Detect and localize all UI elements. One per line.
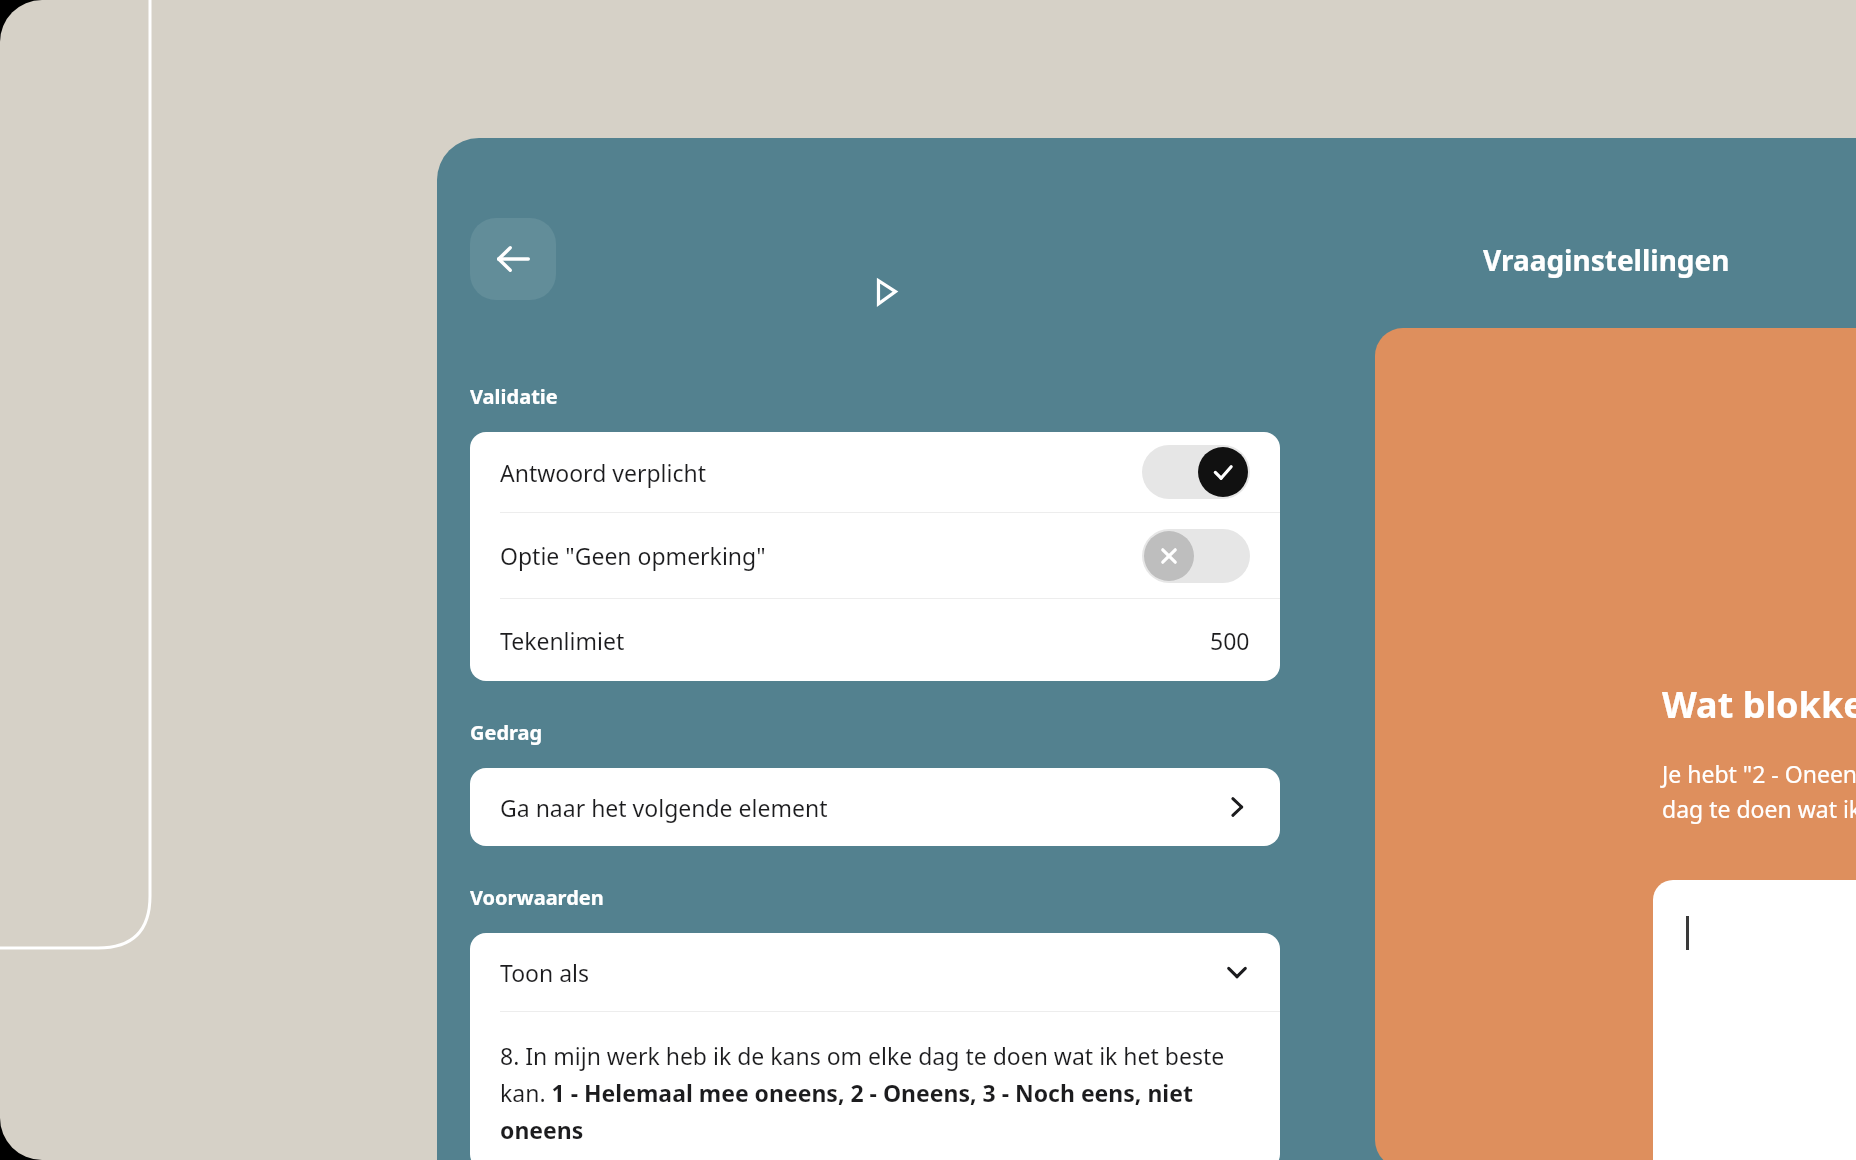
staticText: 8. In mijn werk heb ik de kans om elke d…: [500, 1040, 1256, 1146]
button[interactable]: Uit: [1142, 529, 1250, 583]
staticText: Optie "Geen opmerking": [500, 540, 766, 571]
staticText: Voorwaarden: [470, 884, 604, 911]
staticText: Validatie: [470, 383, 558, 410]
staticText: Wat blokkeert jou?: [1662, 680, 1856, 729]
button[interactable]: Tekstveld: [1653, 880, 1856, 1160]
button[interactable]: Ga naar het volgende element: [470, 768, 1280, 846]
staticText: Toon als: [500, 957, 590, 988]
button[interactable]: Tekenlimiet: [470, 599, 1280, 681]
button[interactable]: Antwoord verplicht: [470, 432, 1280, 512]
button[interactable]: Optie "Geen opmerking": [470, 513, 1280, 598]
staticText: 500: [1210, 625, 1250, 656]
staticText: Je hebt "2 - Oneens" gekozen bij elke da…: [1662, 758, 1856, 825]
staticText: Tekenlimiet: [500, 625, 625, 656]
staticText: Ga naar het volgende element: [500, 792, 828, 823]
staticText: Gedrag: [470, 719, 543, 746]
button[interactable]: Terug: [470, 218, 556, 300]
button[interactable]: Toon als: [470, 933, 1280, 1011]
staticText: Vraaginstellingen: [1483, 241, 1730, 279]
button[interactable]: Aan: [1142, 445, 1250, 499]
staticText: Antwoord verplicht: [500, 457, 707, 488]
